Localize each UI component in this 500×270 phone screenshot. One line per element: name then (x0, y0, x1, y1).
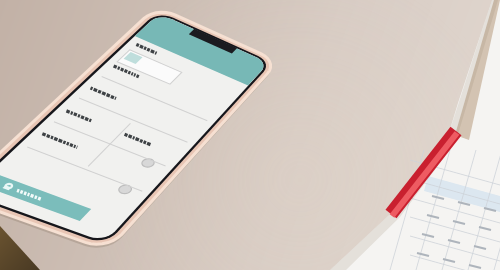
button[interactable]: Credit card payment form (0, 0, 500, 270)
